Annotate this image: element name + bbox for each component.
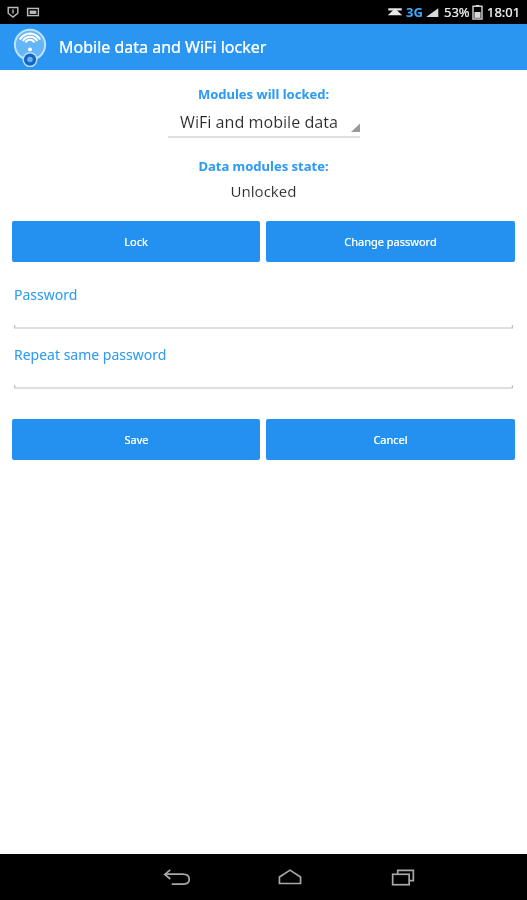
button[interactable]: Change password bbox=[266, 221, 515, 262]
staticText: Unlocked bbox=[0, 181, 527, 201]
staticText: 18:01 bbox=[487, 3, 521, 21]
staticText: WiFi and mobile data bbox=[168, 111, 350, 133]
staticText: Change password bbox=[344, 234, 437, 249]
staticText: Save bbox=[124, 432, 149, 447]
staticText: Password bbox=[14, 285, 78, 304]
button[interactable]: Back bbox=[120, 854, 233, 900]
button[interactable]: Lock bbox=[12, 221, 260, 262]
button[interactable]: Cancel bbox=[266, 419, 515, 460]
button[interactable]: WiFi and mobile data bbox=[168, 111, 360, 138]
staticText: 3G bbox=[406, 3, 423, 21]
staticText: Lock bbox=[124, 234, 148, 249]
button[interactable]: Save bbox=[12, 419, 260, 460]
staticText: Data modules state: bbox=[0, 157, 527, 175]
staticText: 53% bbox=[444, 3, 470, 21]
staticText: Cancel bbox=[373, 432, 408, 447]
button[interactable]: Recent apps bbox=[346, 854, 459, 900]
button[interactable]: Password bbox=[14, 285, 513, 331]
button[interactable]: Home bbox=[233, 854, 346, 900]
staticText: Repeat same password bbox=[14, 345, 167, 364]
staticText: Mobile data and WiFi locker bbox=[59, 36, 267, 58]
button[interactable]: Repeat same password bbox=[14, 345, 513, 391]
staticText: Modules will locked: bbox=[0, 85, 527, 103]
